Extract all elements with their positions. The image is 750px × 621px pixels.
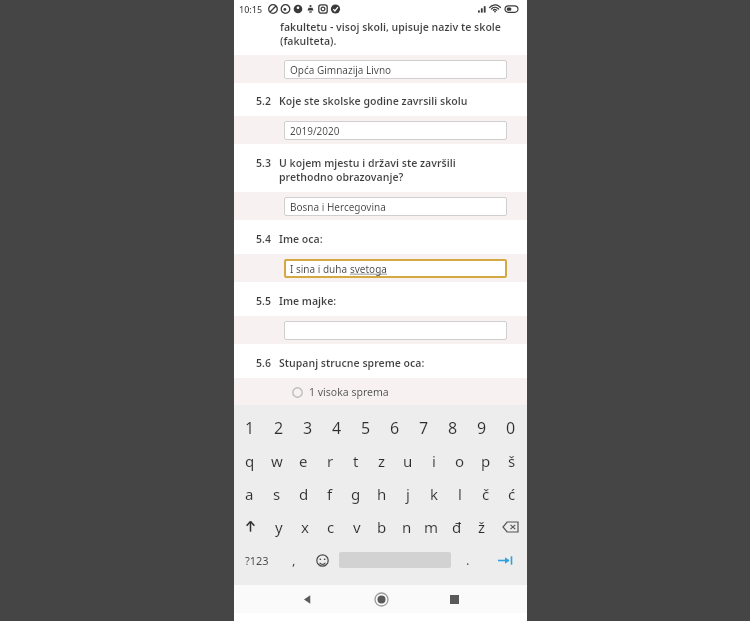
staticText: Ime oca: [279,232,323,246]
button[interactable]: p [473,444,499,477]
staticText: f [327,484,333,504]
button[interactable]: Home [368,586,394,612]
button[interactable]: , [280,543,308,577]
button[interactable]: d [290,477,317,510]
staticText: Opća Gimnazija Livno [290,63,392,77]
button[interactable]: I sina i duha [284,259,507,278]
staticText: k [430,484,439,504]
button[interactable]: l [447,477,473,510]
staticText: , [292,551,296,569]
staticText: š [508,451,516,471]
button[interactable]: n [394,510,419,543]
button[interactable]: 2 [264,411,293,444]
button[interactable]: w [263,444,290,477]
staticText: 5.5 [256,294,271,308]
button[interactable]: . [454,543,482,577]
button[interactable]: k [421,477,447,510]
button[interactable]: ć [499,477,525,510]
staticText: 5 [361,417,371,439]
button[interactable]: m [419,510,444,543]
button[interactable]: z [369,444,395,477]
staticText: Stupanj strucne spreme oca: [279,356,425,370]
button[interactable]: 0 [496,411,525,444]
button[interactable]: Bosna i Hercegovina [284,197,507,216]
button[interactable]: č [473,477,499,510]
button[interactable]: s [263,477,290,510]
staticText: č [482,484,490,504]
button[interactable]: 6 [380,411,409,444]
staticText: fakultetu - visoj skoli, upisuje naziv t… [280,20,501,34]
button[interactable]: 9 [467,411,496,444]
staticText: 6 [390,417,400,439]
button[interactable]: h [369,477,395,510]
staticText: h [377,484,387,504]
staticText: 1 visoka sprema [309,385,389,399]
staticText: 4 [332,417,342,439]
button[interactable]: 1 [236,411,264,444]
button[interactable]: ?123 [234,543,280,577]
button[interactable]: 5 [351,411,380,444]
button[interactable]: c [318,510,344,543]
staticText: g [351,484,361,504]
button[interactable]: x [292,510,318,543]
button[interactable]: Shift [234,510,266,543]
button[interactable]: Emoji [308,543,336,577]
staticText: o [455,451,465,471]
button[interactable]: Next field [482,543,527,577]
button[interactable]: a [236,477,263,510]
button[interactable]: r [317,444,343,477]
button[interactable]: q [236,444,263,477]
staticText: 10:15 [239,3,263,15]
button[interactable]: 1 visoka sprema [234,378,527,405]
staticText: (fakulteta). [280,34,337,48]
button[interactable]: 7 [409,411,438,444]
button[interactable]: j [395,477,421,510]
staticText: n [402,517,412,537]
button[interactable]: Recent apps [441,586,467,612]
staticText: Ime majke: [279,294,337,308]
staticText: 5.3 [256,156,271,170]
staticText: i [432,451,436,471]
button[interactable]: g [343,477,369,510]
staticText: m [424,517,439,537]
button[interactable]: t [343,444,369,477]
staticText: v [353,517,361,537]
staticText: 0 [506,417,516,439]
button[interactable]: Back [294,586,320,612]
button[interactable]: 4 [322,411,351,444]
staticText: ž [478,517,486,537]
staticText: 9 [477,417,487,439]
staticText: l [458,484,462,504]
staticText: 5.4 [256,232,271,246]
staticText: . [466,551,470,569]
staticText: đ [452,517,462,537]
staticText: d [299,484,309,504]
button[interactable]: f [317,477,343,510]
button[interactable]: y [266,510,292,543]
button[interactable]: e [290,444,317,477]
staticText: t [353,451,359,471]
button[interactable]: 8 [438,411,467,444]
button[interactable]: Opća Gimnazija Livno [284,60,507,79]
button[interactable] [284,321,507,340]
staticText: 7 [419,417,429,439]
button[interactable]: u [395,444,421,477]
staticText: j [406,484,410,504]
button[interactable]: đ [444,510,469,543]
staticText: U kojem mjestu i državi ste završili pre… [279,156,456,184]
staticText: y [275,517,283,537]
button[interactable]: i [421,444,447,477]
button[interactable]: b [369,510,394,543]
button[interactable]: 2019/2020 [284,121,507,140]
button[interactable]: o [447,444,473,477]
button[interactable]: ž [469,510,494,543]
button[interactable]: š [499,444,525,477]
button[interactable]: 3 [293,411,322,444]
button[interactable]: v [344,510,369,543]
staticText: I sina i duha [290,262,350,276]
button[interactable]: Backspace [494,510,527,543]
staticText: z [378,451,386,471]
staticText: 8 [448,417,458,439]
staticText: c [327,517,335,537]
